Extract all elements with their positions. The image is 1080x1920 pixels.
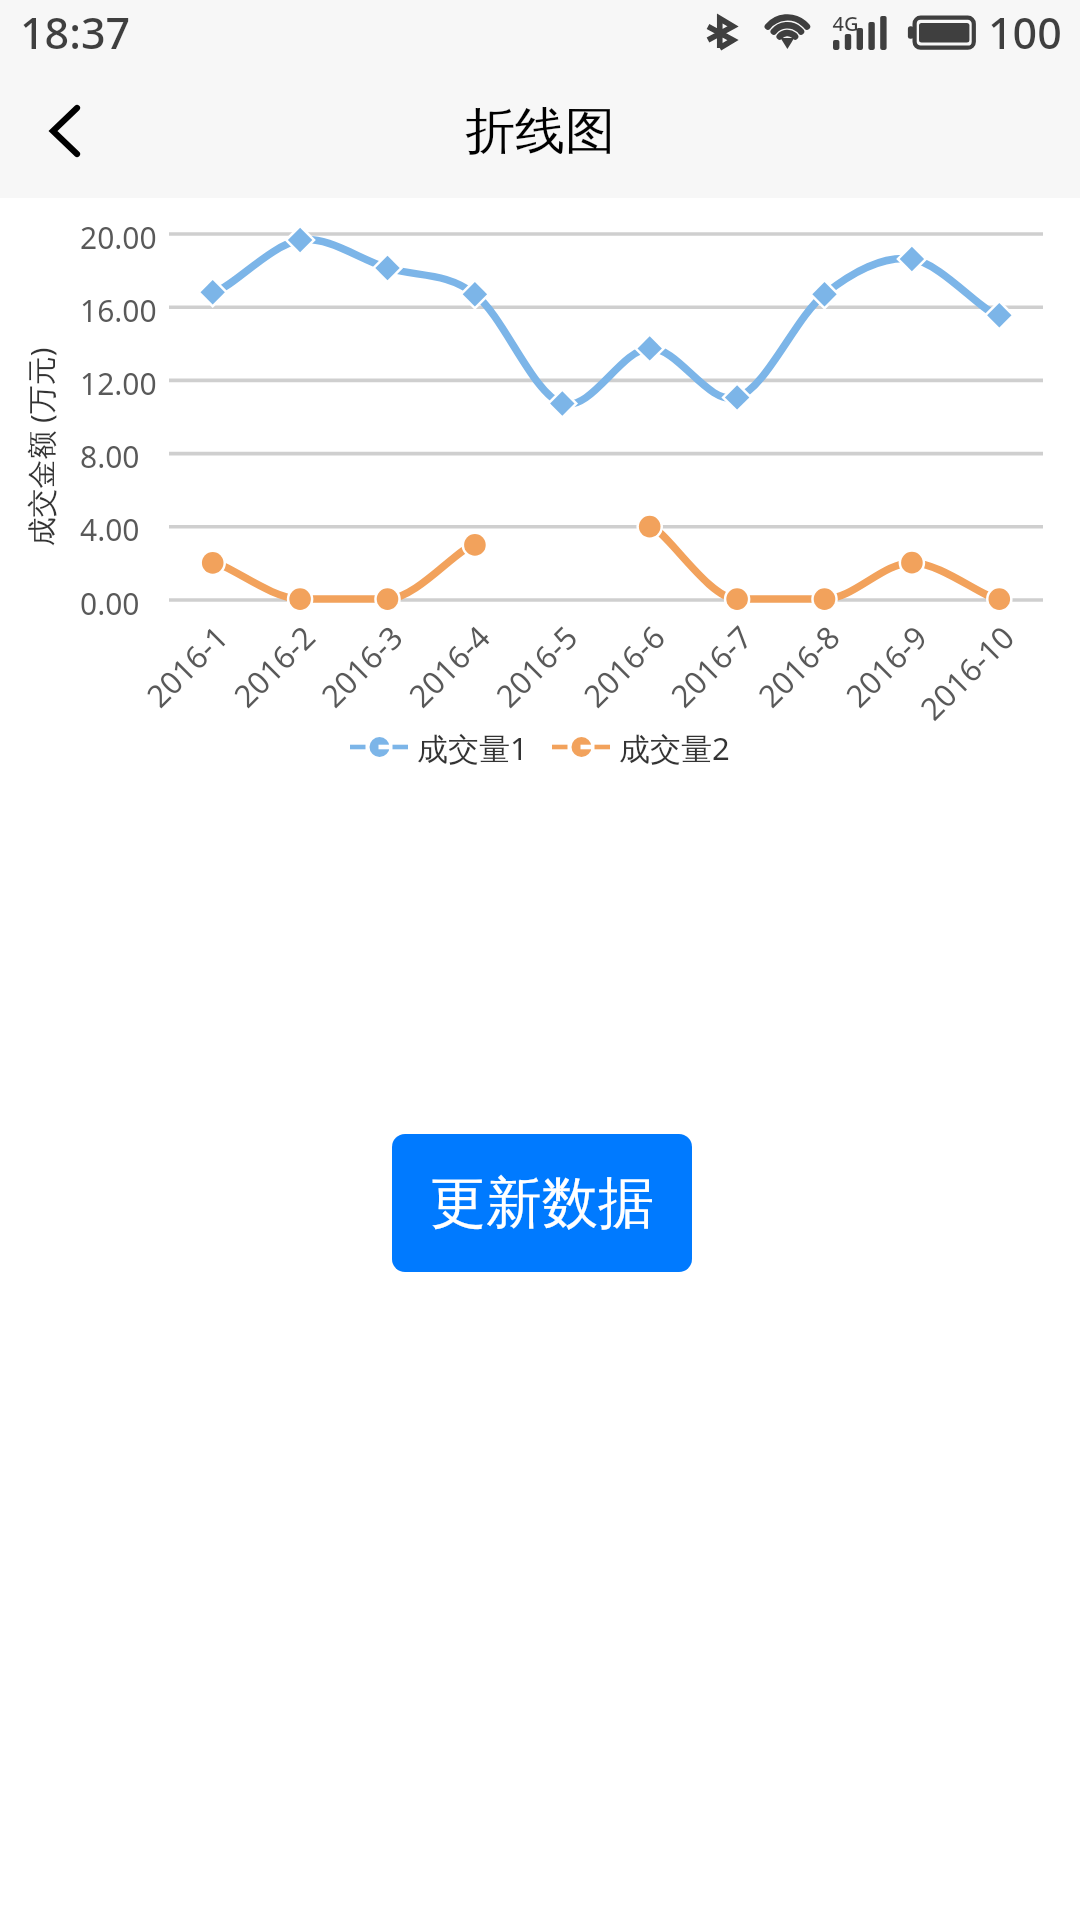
staticText: 更新数据 [430, 1168, 654, 1239]
staticText: 折线图 [465, 100, 615, 163]
staticText: 100 [988, 3, 1062, 62]
staticText: 18:37 [20, 3, 131, 62]
button[interactable]: 更新数据 [392, 1134, 692, 1272]
button[interactable]: Back [0, 64, 130, 198]
